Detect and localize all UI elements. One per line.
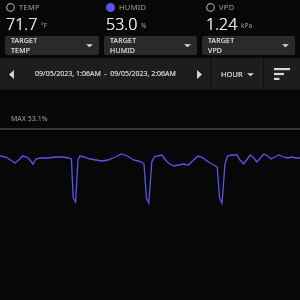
staticText: VPD [219, 2, 235, 12]
button[interactable]: TARGET VPD [202, 36, 295, 55]
button[interactable]: TEMP [0, 0, 100, 32]
staticText: 71.7 [6, 13, 38, 32]
button[interactable]: HUMID [100, 0, 200, 32]
staticText: TARGET HUMID [110, 36, 147, 55]
staticText: 09/05/2023, 1:06AM - 09/05/2023, 2:06AM [35, 69, 176, 79]
button[interactable]: TARGET HUMID [104, 36, 197, 55]
button[interactable]: Next range [188, 63, 210, 85]
button[interactable]: VPD [200, 0, 300, 32]
staticText: kPa [241, 21, 253, 30]
staticText: MAX 53.1% [11, 114, 48, 124]
staticText: TEMP [19, 2, 40, 12]
staticText: 1.24 [206, 13, 238, 32]
button[interactable]: 09/05/2023, 1:06AM - 09/05/2023, 2:06AM [22, 69, 188, 79]
staticText: HOUR [221, 69, 243, 79]
staticText: TARGET TEMP [11, 36, 48, 55]
button[interactable]: Previous range [0, 63, 22, 85]
button[interactable]: Sort options [264, 58, 300, 90]
button[interactable]: TARGET TEMP [5, 36, 99, 55]
staticText: HUMID [119, 2, 147, 12]
staticText: °F [41, 21, 48, 30]
staticText: 53.0 [106, 13, 138, 32]
staticText: % [141, 21, 147, 30]
staticText: TARGET VPD [208, 36, 245, 55]
button[interactable]: HOUR [211, 58, 263, 90]
